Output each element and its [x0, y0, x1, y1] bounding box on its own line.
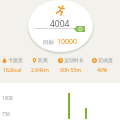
other: Running	[55, 5, 67, 17]
staticText: 00h 53m	[60, 66, 82, 73]
staticText: 卡路里	[8, 57, 23, 63]
staticText: 4004	[50, 18, 70, 30]
staticText: 10000	[57, 37, 78, 47]
staticText: 1008	[2, 95, 13, 101]
staticText: 162kcal	[3, 66, 22, 73]
button[interactable]: 卡路里	[0, 55, 28, 77]
button[interactable]: 完成度	[86, 55, 118, 77]
button[interactable]: 运动时长	[55, 55, 87, 77]
staticText: 距离	[38, 57, 48, 63]
staticText: 40%	[97, 66, 108, 73]
staticText: 2.64km	[31, 66, 49, 73]
staticText: 756	[2, 111, 10, 117]
button[interactable]: 距离	[24, 55, 56, 77]
staticText: 目标	[43, 39, 54, 46]
staticText: 完成度	[98, 57, 113, 63]
staticText: 运动时长	[64, 57, 84, 63]
